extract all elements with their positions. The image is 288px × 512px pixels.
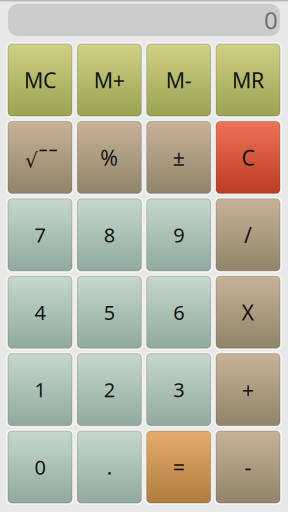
staticText: ± [173,143,185,171]
staticText: - [244,453,251,481]
button[interactable]: C [216,121,280,193]
staticText: 4 [34,299,45,325]
button[interactable]: M- [147,44,211,116]
button[interactable]: + [216,354,280,426]
staticText: 3 [173,376,184,403]
button[interactable]: . [77,431,141,503]
staticText: M- [166,66,192,94]
staticText: 2 [104,376,115,403]
button[interactable]: MC [8,44,72,116]
staticText: M+ [94,66,125,94]
button[interactable]: X [216,276,280,348]
staticText: + [242,375,254,404]
button[interactable]: 9 [147,199,211,271]
button[interactable]: MR [216,44,280,116]
staticText: 1 [34,376,45,403]
staticText: MC [24,66,56,94]
staticText: 8 [104,221,115,248]
button[interactable]: 3 [147,354,211,426]
staticText: 7 [34,221,45,248]
staticText: 9 [173,221,184,248]
staticText: 6 [173,299,184,325]
staticText: X [241,298,254,326]
button[interactable]: ± [147,121,211,193]
staticText: 0 [264,4,278,36]
staticText: % [100,143,118,171]
staticText: . [107,454,112,480]
staticText: 0 [34,454,45,480]
staticText: 5 [104,299,115,325]
button[interactable]: 8 [77,199,141,271]
button[interactable]: 6 [147,276,211,348]
staticText: = [173,453,185,481]
button[interactable]: = [147,431,211,503]
button[interactable]: 2 [77,354,141,426]
button[interactable]: 4 [8,276,72,348]
button[interactable]: - [216,431,280,503]
button[interactable]: 1 [8,354,72,426]
button[interactable]: % [77,121,141,193]
staticText: C [241,143,254,171]
staticText: √ [25,149,38,172]
staticText: MR [232,66,264,94]
button[interactable]: M+ [77,44,141,116]
staticText: / [244,221,252,249]
button[interactable]: / [216,199,280,271]
button[interactable]: 5 [77,276,141,348]
button[interactable]: Square root [8,121,72,193]
button[interactable]: 0 [8,431,72,503]
button[interactable]: 7 [8,199,72,271]
